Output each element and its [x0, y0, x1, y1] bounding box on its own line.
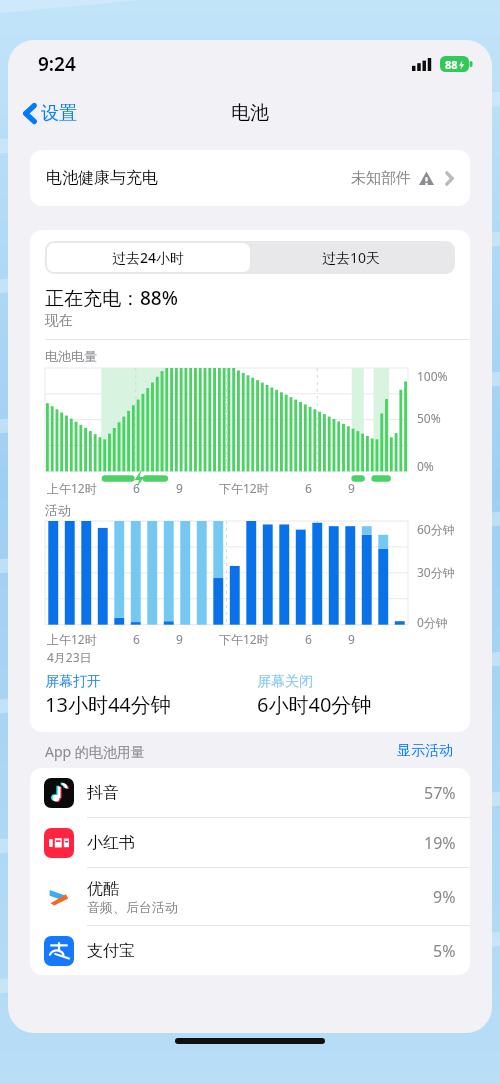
other: 支付宝: [44, 936, 74, 966]
staticText: 上午12时: [47, 631, 97, 647]
staticText: 4月23日: [47, 649, 92, 665]
other: 抖音: [44, 778, 74, 808]
staticText: 0%: [417, 458, 434, 474]
staticText: 100%: [417, 368, 448, 384]
staticText: 60分钟: [417, 521, 455, 537]
staticText: 6: [305, 631, 312, 647]
staticText: 支付宝: [87, 941, 135, 961]
staticText: 0分钟: [417, 614, 448, 630]
staticText: 音频、后台活动: [87, 899, 178, 915]
staticText: 过去24小时: [112, 248, 185, 267]
staticText: 优酷: [87, 879, 119, 899]
staticText: 小红书: [87, 833, 135, 853]
staticText: 电池电量: [45, 348, 97, 364]
staticText: 正在充电：88%: [45, 285, 178, 311]
staticText: 6: [133, 631, 140, 647]
staticText: 9: [348, 480, 355, 496]
button[interactable]: 过去10天: [250, 243, 453, 272]
button[interactable]: 抖音: [30, 768, 470, 817]
staticText: 现在: [45, 312, 73, 330]
staticText: 9: [176, 480, 183, 496]
button[interactable]: 优酷: [30, 868, 470, 925]
staticText: 抖音: [87, 783, 119, 803]
staticText: 下午12时: [219, 480, 269, 496]
button[interactable]: 小红书: [30, 818, 470, 867]
staticText: 6: [133, 480, 140, 496]
staticText: 50%: [417, 410, 441, 426]
staticText: 6小时40分钟: [257, 691, 372, 718]
staticText: App 的电池用量: [45, 742, 145, 761]
staticText: 屏幕打开: [45, 673, 101, 691]
staticText: 57%: [424, 782, 456, 804]
staticText: 屏幕关闭: [257, 673, 313, 691]
staticText: 上午12时: [47, 480, 97, 496]
staticText: 13小时44分钟: [45, 691, 171, 718]
button[interactable]: 设置: [8, 94, 91, 133]
staticText: 9%: [433, 886, 456, 908]
button[interactable]: 过去24小时: [47, 243, 250, 272]
staticText: 下午12时: [219, 631, 269, 647]
staticText: 9:24: [38, 51, 76, 77]
staticText: 显示活动: [397, 742, 453, 760]
staticText: 活动: [45, 502, 71, 518]
button[interactable]: 支付宝: [30, 926, 470, 975]
staticText: 电池健康与充电: [46, 168, 158, 188]
button[interactable]: 显示活动: [395, 740, 455, 762]
staticText: 设置: [41, 102, 77, 125]
staticText: 电池: [231, 101, 269, 125]
staticText: 9: [176, 631, 183, 647]
staticText: 9: [348, 631, 355, 647]
staticText: 88: [445, 57, 458, 72]
other: 优酷: [44, 882, 74, 912]
other: 小红书: [44, 828, 74, 858]
staticText: 过去10天: [322, 248, 381, 267]
button[interactable]: 电池健康与充电: [30, 150, 470, 206]
staticText: 19%: [424, 832, 456, 854]
staticText: 未知部件: [351, 169, 411, 188]
staticText: 5%: [433, 940, 456, 962]
staticText: 6: [305, 480, 312, 496]
staticText: 30分钟: [417, 564, 455, 580]
